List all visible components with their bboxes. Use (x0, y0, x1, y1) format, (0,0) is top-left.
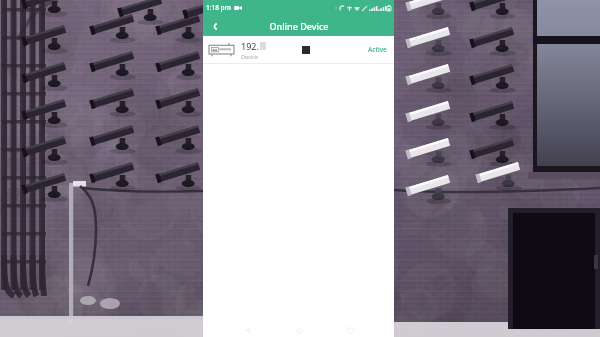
staticText: Device (241, 53, 258, 60)
button[interactable]: Back (207, 18, 223, 34)
staticText: 192. (241, 40, 259, 52)
staticText: 1:18 pm (206, 3, 231, 12)
staticText: Online Device (269, 20, 329, 32)
staticText: Active (368, 45, 387, 54)
button[interactable]: 192. (203, 36, 394, 64)
